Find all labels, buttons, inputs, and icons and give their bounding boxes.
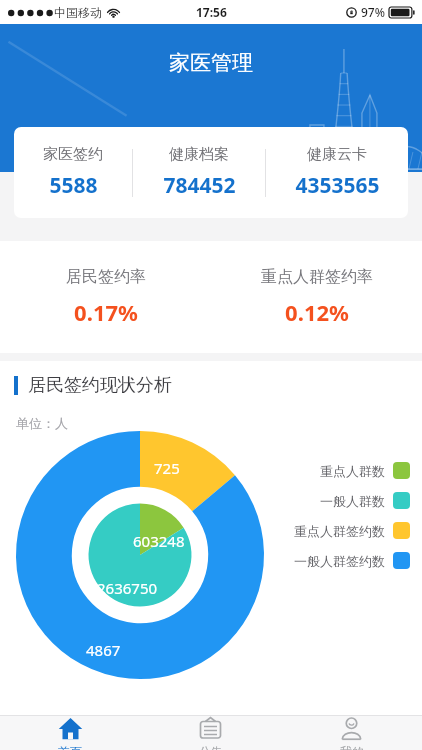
staticText: 4867 (86, 640, 121, 660)
staticText: 家医管理 (169, 50, 253, 76)
button[interactable]: 一般人群签约数 (294, 552, 410, 569)
staticText: 2636750 (97, 578, 158, 598)
button[interactable]: 重点人群签约率 (211, 241, 422, 353)
staticText: 725 (154, 458, 180, 478)
button[interactable]: 重点人群数 (320, 462, 410, 479)
staticText: 17:56 (196, 4, 227, 20)
staticText: 5588 (49, 171, 98, 200)
staticText: 重点人群签约数 (294, 523, 385, 539)
staticText: 一般人群签约数 (294, 553, 385, 569)
button[interactable]: 重点人群签约数 (294, 522, 410, 539)
staticText: 中国移动 (54, 5, 102, 20)
button[interactable]: 家医签约 (14, 145, 132, 200)
staticText: 健康档案 (169, 145, 229, 164)
staticText: 0.12% (285, 297, 349, 327)
staticText: 家医签约 (43, 145, 103, 164)
staticText: 603248 (133, 531, 185, 551)
staticText: 重点人群签约率 (261, 267, 373, 287)
staticText: 我的 (340, 744, 364, 750)
staticText: 一般人群数 (320, 493, 385, 509)
button[interactable]: 我的 (281, 716, 422, 750)
staticText: 784452 (163, 171, 236, 200)
staticText: 首页 (58, 744, 82, 750)
button[interactable]: 公告 (140, 716, 281, 750)
button[interactable]: 一般人群数 (320, 492, 410, 509)
staticText: 健康云卡 (307, 145, 367, 164)
button[interactable]: 健康档案 (133, 145, 265, 200)
button[interactable]: 首页 (0, 716, 140, 750)
staticText: 0.17% (74, 297, 138, 327)
staticText: 重点人群数 (320, 463, 385, 479)
button[interactable]: 健康云卡 (266, 145, 408, 200)
button[interactable]: 居民签约率 (0, 241, 211, 353)
staticText: 居民签约率 (66, 267, 146, 287)
staticText: 公告 (199, 744, 223, 750)
staticText: 单位：人 (16, 415, 68, 431)
staticText: 4353565 (295, 171, 380, 200)
staticText: 97% (361, 4, 385, 20)
staticText: 居民签约现状分析 (28, 374, 172, 397)
